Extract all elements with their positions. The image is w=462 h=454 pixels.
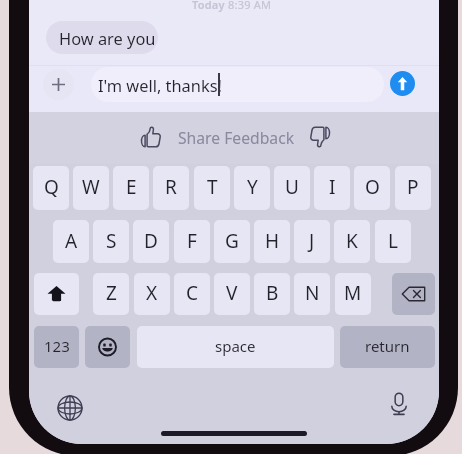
button[interactable]: I xyxy=(314,166,350,210)
staticText: I xyxy=(329,174,336,200)
staticText: M xyxy=(344,280,362,306)
button[interactable]: K xyxy=(334,220,370,263)
button[interactable]: U xyxy=(274,166,310,210)
staticText: return xyxy=(365,336,410,356)
staticText: C xyxy=(186,280,199,306)
staticText: G xyxy=(225,228,239,254)
staticText: O xyxy=(365,174,380,200)
staticText: Today xyxy=(192,0,225,12)
button[interactable]: Q xyxy=(33,166,69,210)
staticText: T xyxy=(207,174,218,200)
button[interactable]: 123 xyxy=(34,326,79,368)
button[interactable]: Send xyxy=(390,71,415,96)
button[interactable]: How are you xyxy=(46,21,158,54)
button[interactable]: Share Feedback xyxy=(178,127,295,148)
staticText: B xyxy=(266,280,279,306)
button[interactable]: T xyxy=(194,166,230,210)
staticText: W xyxy=(82,174,100,200)
staticText: E xyxy=(126,174,137,200)
button[interactable]: L xyxy=(375,220,411,263)
button[interactable]: Shift xyxy=(34,273,79,315)
staticText: 8:39 AM xyxy=(225,0,272,12)
staticText: K xyxy=(346,228,358,254)
staticText: J xyxy=(309,228,315,254)
button[interactable]: Backspace xyxy=(392,273,435,315)
button[interactable]: C xyxy=(174,273,210,315)
button[interactable]: X xyxy=(134,273,170,315)
staticText: F xyxy=(187,228,197,254)
staticText: P xyxy=(407,174,419,200)
staticText: U xyxy=(285,174,299,200)
button[interactable]: Add attachment xyxy=(43,69,74,100)
staticText: Q xyxy=(44,174,59,200)
button[interactable]: P xyxy=(395,166,431,210)
staticText: V xyxy=(226,280,238,306)
button[interactable]: Change keyboard xyxy=(55,393,85,423)
staticText: Z xyxy=(106,280,117,306)
staticText: Share Feedback xyxy=(178,127,295,148)
button[interactable]: W xyxy=(73,166,109,210)
button[interactable]: A xyxy=(53,220,89,263)
button[interactable]: I'm well, thanks! xyxy=(91,67,384,102)
button[interactable]: D xyxy=(133,220,169,263)
staticText: R xyxy=(165,174,177,200)
staticText: A xyxy=(65,228,78,254)
button[interactable]: E xyxy=(113,166,149,210)
button[interactable]: O xyxy=(354,166,390,210)
button[interactable]: Z xyxy=(93,273,129,315)
button[interactable]: Thumbs up xyxy=(137,123,164,150)
button[interactable]: B xyxy=(254,273,290,315)
staticText: X xyxy=(146,280,158,306)
button[interactable]: S xyxy=(93,220,129,263)
button[interactable]: Thumbs down xyxy=(306,123,333,150)
staticText: How are you xyxy=(59,27,156,49)
button[interactable]: space xyxy=(137,326,334,368)
staticText: D xyxy=(144,228,158,254)
button[interactable]: F xyxy=(174,220,210,263)
staticText: S xyxy=(106,228,117,254)
button[interactable]: return xyxy=(340,326,435,368)
button[interactable]: G xyxy=(214,220,250,263)
staticText: space xyxy=(215,336,256,356)
staticText: N xyxy=(305,280,320,306)
button[interactable]: J xyxy=(294,220,330,263)
staticText: L xyxy=(388,228,398,254)
staticText: Y xyxy=(247,174,258,200)
button[interactable]: H xyxy=(254,220,290,263)
button[interactable]: V xyxy=(214,273,250,315)
button[interactable]: Emoji xyxy=(85,326,130,368)
button[interactable]: R xyxy=(153,166,189,210)
staticText: H xyxy=(265,228,280,254)
button[interactable]: Y xyxy=(234,166,270,210)
button[interactable]: N xyxy=(294,273,330,315)
button[interactable]: Dictate xyxy=(385,390,413,418)
staticText: 123 xyxy=(44,336,70,356)
staticText: I'm well, thanks! xyxy=(98,74,222,96)
button[interactable]: M xyxy=(335,273,371,315)
